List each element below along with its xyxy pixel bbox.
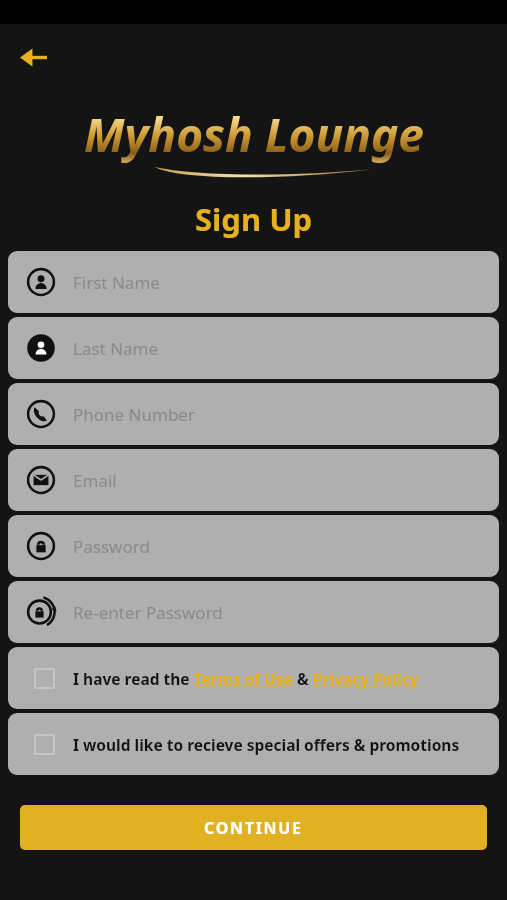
other: Phone bbox=[8, 399, 73, 429]
button[interactable]: Person bbox=[8, 251, 499, 313]
button[interactable]: CONTINUE bbox=[20, 805, 487, 850]
staticText: Last Name bbox=[73, 337, 159, 360]
button[interactable]: Password bbox=[8, 515, 499, 577]
staticText: Phone Number bbox=[73, 403, 195, 426]
staticText: Re-enter Password bbox=[73, 601, 223, 624]
other: Person bbox=[8, 333, 73, 363]
button[interactable]: Person bbox=[8, 317, 499, 379]
button[interactable]: Email bbox=[8, 449, 499, 511]
staticText: Sign Up bbox=[195, 198, 313, 240]
staticText: Email bbox=[73, 469, 117, 492]
other: Re-enter password bbox=[8, 597, 73, 627]
button[interactable]: I would like to recieve special offers &… bbox=[8, 713, 499, 775]
staticText: First Name bbox=[73, 271, 160, 294]
other: Person bbox=[8, 267, 73, 297]
other: Password bbox=[8, 531, 73, 561]
button[interactable]: I have read the Terms of Use & Privacy P… bbox=[8, 647, 499, 709]
button[interactable]: Back bbox=[11, 35, 55, 79]
staticText: I have read the Terms of Use & Privacy P… bbox=[73, 668, 419, 689]
button[interactable]: Phone bbox=[8, 383, 499, 445]
staticText: Myhosh Lounge bbox=[84, 103, 424, 166]
staticText: Password bbox=[73, 535, 150, 558]
staticText: I would like to recieve special offers &… bbox=[73, 734, 460, 755]
staticText: CONTINUE bbox=[204, 817, 303, 839]
other: Email bbox=[8, 465, 73, 495]
button[interactable]: Re-enter password bbox=[8, 581, 499, 643]
